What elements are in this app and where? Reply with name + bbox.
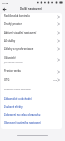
staticText: Obnovení továrního nastavení	[4, 121, 41, 124]
button[interactable]: Zobrazení na celou obrazovku	[1, 110, 62, 118]
staticText: Zvukové efekty	[4, 105, 23, 108]
button[interactable]: Uživatelé	[1, 53, 62, 67]
staticText: Další nastavení	[20, 7, 42, 11]
staticText: Zákaznické a obchodní	[4, 97, 32, 100]
staticText: Uživatelé	[4, 56, 16, 60]
button[interactable]: Prostor webu	[1, 67, 62, 76]
button[interactable]: Back	[1, 6, 8, 13]
staticText: OTG	[4, 78, 10, 82]
button[interactable]: Zálohy a synchronizace	[1, 45, 62, 53]
staticText: Rodičovská kontrola	[4, 14, 30, 18]
staticText: AI služby	[4, 39, 16, 43]
staticText: Zobrazení na celou obrazovku	[4, 113, 41, 116]
staticText: Vyp	[53, 79, 58, 82]
button[interactable]: Rodičovská kontrola	[1, 13, 62, 20]
button[interactable]: AI služby	[1, 37, 62, 45]
button[interactable]: Druhý prostor	[1, 20, 62, 28]
button[interactable]: Obnovení továrního nastavení	[1, 118, 62, 126]
staticText: Prostor webu	[4, 69, 21, 73]
staticText: 10:48	[2, 1, 9, 4]
button[interactable]: OTG	[1, 76, 62, 84]
staticText: Aktivní vizuální nastavení	[4, 31, 37, 35]
staticText: Podpora a další nastavení	[4, 88, 31, 91]
staticText: Jen uživatel Vlastník	[4, 61, 23, 64]
staticText: Druhý prostor	[4, 22, 22, 26]
button[interactable]: Aktivní vizuální nastavení	[1, 29, 62, 37]
button[interactable]: Zvukové efekty	[1, 102, 62, 110]
staticText: Zálohy a synchronizace	[4, 47, 34, 51]
button[interactable]: Zákaznické a obchodní	[1, 94, 62, 102]
